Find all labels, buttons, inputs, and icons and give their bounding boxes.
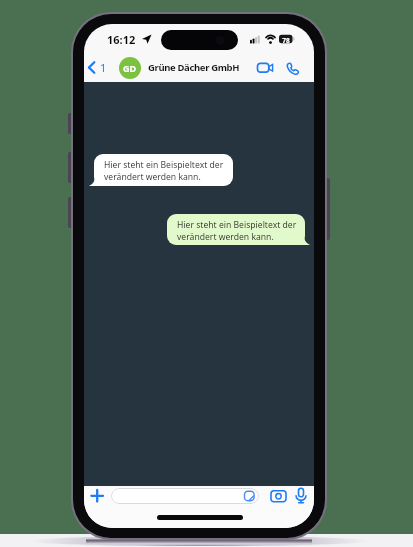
staticText: GD <box>123 62 137 74</box>
button[interactable]: Hier steht ein Beispieltext der veränder… <box>177 219 297 243</box>
button[interactable]: 1 <box>87 52 107 82</box>
button[interactable] <box>90 489 105 503</box>
button[interactable]: GD <box>119 57 141 79</box>
button[interactable] <box>294 487 308 504</box>
button[interactable]: Grüne Dächer GmbH <box>148 61 240 74</box>
staticText: 78 <box>279 36 293 45</box>
button[interactable]: Hier steht ein Beispieltext der veränder… <box>104 159 224 183</box>
button[interactable] <box>269 487 288 504</box>
staticText: 1 <box>100 60 107 75</box>
button[interactable] <box>111 488 259 504</box>
button[interactable] <box>286 62 299 75</box>
button[interactable] <box>256 60 275 75</box>
staticText: 16:12 <box>107 32 136 47</box>
